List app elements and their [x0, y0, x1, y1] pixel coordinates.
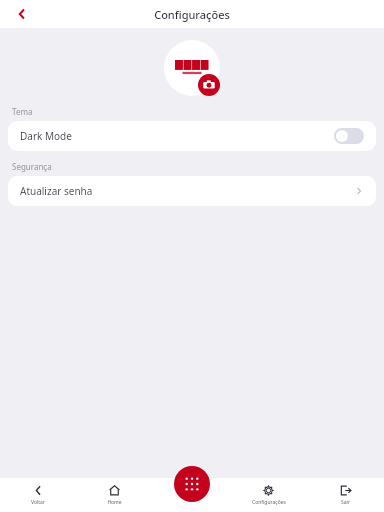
button[interactable]: Alterar foto de perfil [164, 40, 220, 96]
staticText: Dark Mode [20, 129, 334, 143]
staticText: Segurança [12, 161, 52, 172]
button[interactable]: Configurações [230, 478, 307, 512]
staticText: Configurações [154, 7, 230, 22]
staticText: Tema [12, 106, 33, 117]
staticText: Atualizar senha [20, 184, 354, 198]
staticText: Configurações [252, 499, 286, 506]
button[interactable]: Atualizar senha [8, 176, 376, 206]
button[interactable]: Menu de aplicativos [174, 466, 210, 502]
button[interactable]: Voltar [0, 478, 76, 512]
staticText: Sair [341, 499, 350, 506]
staticText: Home [107, 499, 122, 506]
button[interactable]: Voltar [8, 0, 36, 28]
button[interactable]: Home [76, 478, 153, 512]
staticText: Voltar [31, 499, 45, 506]
button[interactable]: Dark Mode [8, 121, 376, 151]
button[interactable]: Sair [307, 478, 384, 512]
button[interactable]: Alternar modo escuro [334, 128, 364, 144]
